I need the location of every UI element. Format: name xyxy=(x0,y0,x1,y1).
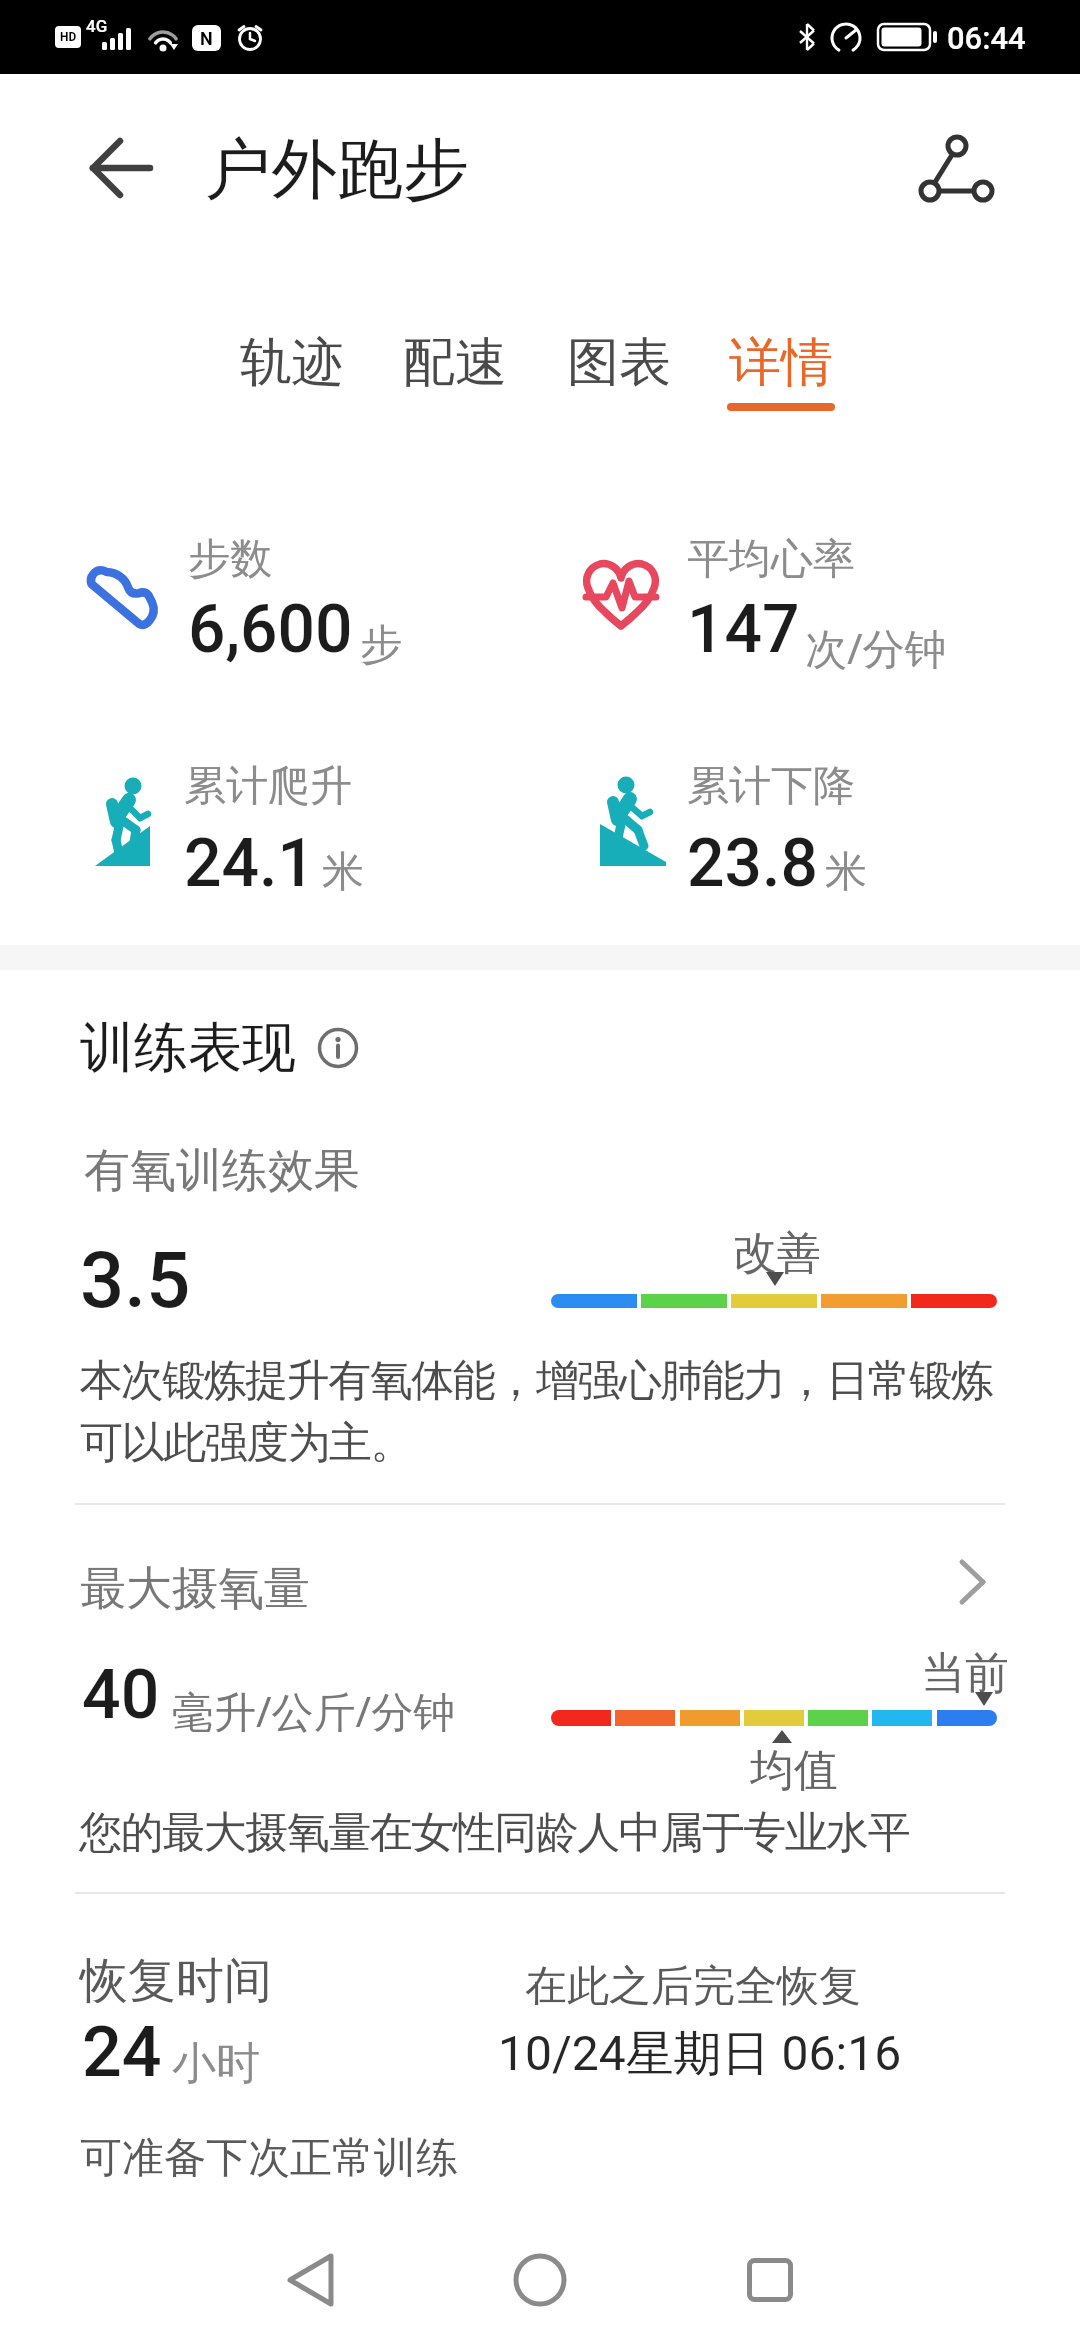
staticText: 24.1 xyxy=(184,825,315,902)
staticText: 10/24星期日 06:16 xyxy=(498,2024,902,2084)
staticText: 恢复时间 xyxy=(80,1951,272,2011)
staticText: 6,600 xyxy=(188,591,353,668)
button[interactable] xyxy=(70,120,170,216)
staticText: 累计爬升 xyxy=(184,760,352,813)
staticText: 步数 xyxy=(188,533,272,586)
staticText: 40 xyxy=(82,1655,160,1735)
staticText: 本次锻炼提升有氧体能，增强心肺能力，日常锻炼 可以此强度为主。 xyxy=(80,1354,993,1470)
button[interactable] xyxy=(60,1530,1020,1870)
button[interactable]: 配速 xyxy=(383,315,527,425)
staticText: 23.8 xyxy=(687,825,818,902)
staticText: 最大摄氧量 xyxy=(80,1560,310,1618)
staticText: 米 xyxy=(825,846,867,899)
staticText: 毫升/公斤/分钟 xyxy=(172,1682,456,1739)
staticText: 147 xyxy=(687,591,800,668)
staticText: 步 xyxy=(360,619,402,672)
staticText: 详情 xyxy=(729,330,833,396)
staticText: 户外跑步 xyxy=(205,128,469,211)
staticText: 24 xyxy=(82,2011,162,2093)
button[interactable] xyxy=(470,2230,610,2330)
staticText: 配速 xyxy=(403,330,507,396)
staticText: 训练表现 xyxy=(80,1014,296,1082)
button[interactable] xyxy=(240,2230,380,2330)
staticText: 您的最大摄氧量在女性同龄人中属于专业水平 xyxy=(80,1806,910,1860)
staticText: 次/分钟 xyxy=(805,619,947,676)
staticText: 累计下降 xyxy=(687,760,855,813)
staticText: 可准备下次正常训练 xyxy=(80,2132,458,2185)
button[interactable] xyxy=(305,1015,371,1081)
staticText: N xyxy=(200,28,213,49)
staticText: 当前 xyxy=(921,1646,1009,1701)
staticText: 4G xyxy=(86,16,108,36)
staticText: 有氧训练效果 xyxy=(84,1142,360,1200)
button[interactable] xyxy=(700,2230,840,2330)
button[interactable]: 详情 xyxy=(709,315,853,425)
staticText: 轨迹 xyxy=(240,330,344,396)
staticText: 3.5 xyxy=(80,1235,191,1326)
button[interactable]: 图表 xyxy=(547,315,691,425)
staticText: HD xyxy=(60,30,77,44)
button[interactable]: 轨迹 xyxy=(220,315,364,425)
staticText: 平均心率 xyxy=(687,533,855,586)
staticText: 均值 xyxy=(750,1743,838,1798)
staticText: 改善 xyxy=(733,1226,821,1281)
staticText: 06:44 xyxy=(947,20,1026,56)
staticText: 在此之后完全恢复 xyxy=(525,1960,861,2013)
button[interactable] xyxy=(900,115,1010,220)
staticText: 图表 xyxy=(567,330,671,396)
staticText: 米 xyxy=(322,846,364,899)
staticText: 小时 xyxy=(172,2036,260,2091)
